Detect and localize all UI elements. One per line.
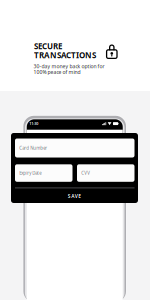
staticText: SAVE [68,193,81,199]
staticText: 100% peace of mind [33,69,80,76]
button[interactable]: Card Number [15,138,134,157]
staticText: TRANSACTIONS [34,50,96,61]
button[interactable]: CVV [77,164,134,182]
staticText: SECURE [34,41,62,52]
button[interactable]: Expiry Date [15,164,72,182]
staticText: Card Number [19,145,47,151]
staticText: 11:30 [29,121,38,126]
staticText: 30-day money back option for [33,63,104,70]
staticText: CVV [81,170,90,176]
staticText: Expiry Date [19,170,41,176]
button[interactable]: SAVE [11,189,138,203]
